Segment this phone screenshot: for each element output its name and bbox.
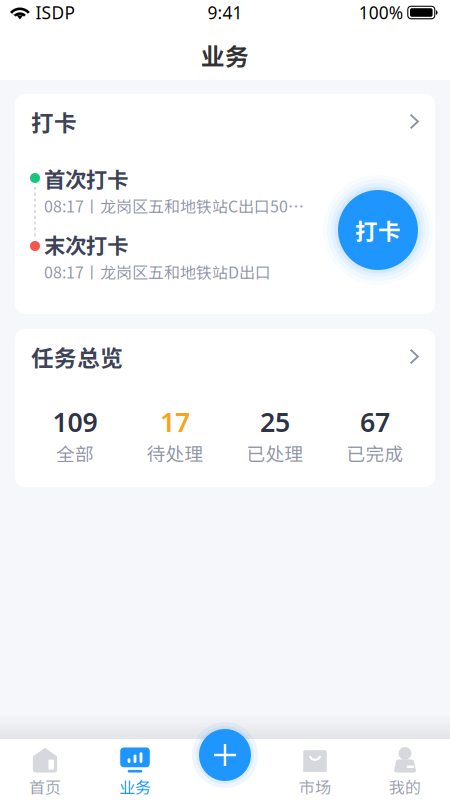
staticText: 业务 <box>119 775 151 798</box>
staticText: 67 <box>360 404 390 439</box>
staticText: 100% <box>359 1 403 24</box>
staticText: 08:17丨龙岗区五和地铁站C出口50… <box>44 194 304 217</box>
staticText: 17 <box>160 404 190 439</box>
staticText: 业务 <box>201 38 249 72</box>
staticText: 9:41 <box>207 1 242 24</box>
staticText: 我的 <box>389 775 421 798</box>
button[interactable]: 市场 <box>270 739 360 800</box>
button[interactable]: 新建 <box>192 722 258 788</box>
staticText: 已完成 <box>346 439 403 466</box>
button[interactable]: 17 <box>125 404 225 466</box>
staticText: 打卡 <box>355 214 401 246</box>
staticText: 末次打卡 <box>44 229 128 260</box>
staticText: 首页 <box>29 775 61 798</box>
staticText: 已处理 <box>246 439 303 466</box>
staticText: 全部 <box>56 439 94 466</box>
staticText: ISDP <box>35 1 74 24</box>
staticText: 首次打卡 <box>44 163 128 194</box>
button[interactable]: 我的 <box>360 739 450 800</box>
button[interactable]: 任务总览 <box>15 329 435 384</box>
button[interactable]: 首页 <box>0 739 90 800</box>
staticText: 打卡 <box>31 105 77 138</box>
staticText: 08:17丨龙岗区五和地铁站D出口 <box>44 260 271 283</box>
staticText: 市场 <box>299 775 331 798</box>
button[interactable]: 25 <box>225 404 325 466</box>
staticText: 109 <box>52 404 97 439</box>
button[interactable]: 67 <box>325 404 425 466</box>
staticText: 待处理 <box>146 439 203 466</box>
button[interactable]: 打卡 <box>323 175 433 285</box>
button[interactable]: 109 <box>25 404 125 466</box>
staticText: 25 <box>260 404 290 439</box>
staticText: 任务总览 <box>31 340 123 373</box>
button[interactable]: 打卡 <box>15 94 435 149</box>
button[interactable]: 业务 <box>90 739 180 800</box>
